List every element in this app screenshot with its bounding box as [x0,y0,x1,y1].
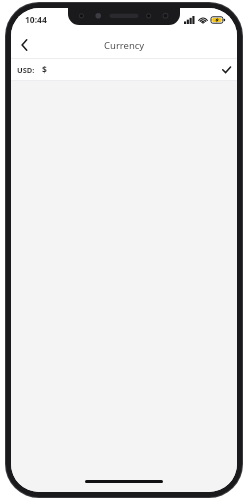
button[interactable]: USD: [11,59,237,80]
staticText: Currency [104,39,145,52]
staticText: $ [42,64,47,76]
button[interactable]: Back [11,32,37,58]
staticText: 10:44 [25,14,47,26]
staticText: USD: [17,65,35,75]
